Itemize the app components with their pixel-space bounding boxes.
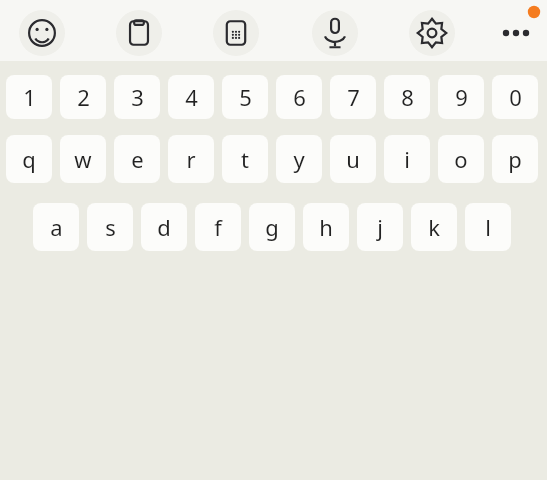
button[interactable]: l [465, 203, 511, 251]
button[interactable]: 9 [438, 75, 484, 119]
staticText: g [265, 212, 279, 242]
button[interactable]: y [276, 135, 322, 183]
button[interactable]: k [411, 203, 457, 251]
button[interactable]: 2 [60, 75, 106, 119]
button[interactable]: h [303, 203, 349, 251]
staticText: 7 [347, 82, 360, 112]
staticText: 8 [401, 82, 414, 112]
button[interactable]: d [141, 203, 187, 251]
staticText: "ctb_retention_day" [19, 197, 157, 217]
staticText: 3 [131, 82, 144, 112]
button[interactable]: More options [490, 0, 547, 61]
staticText: a [50, 212, 63, 242]
staticText: w [74, 144, 92, 174]
staticText: "30" [179, 197, 209, 217]
staticText: 9 [455, 82, 468, 112]
staticText: e [131, 144, 144, 174]
button[interactable]: Stickers [213, 10, 259, 56]
staticText: y [293, 144, 305, 174]
staticText: Save Changes [214, 143, 331, 166]
button[interactable]: Settings [409, 10, 455, 56]
staticText: l [485, 212, 491, 242]
button[interactable]: 5 [222, 75, 268, 119]
button[interactable]: r [168, 135, 214, 183]
button[interactable]: Clipboard [116, 10, 162, 56]
button[interactable]: f [195, 203, 241, 251]
button[interactable]: g [249, 203, 295, 251]
staticText: q [22, 144, 36, 174]
staticText: d [157, 212, 171, 242]
staticText: s [105, 212, 116, 242]
button[interactable]: w [60, 135, 106, 183]
button[interactable]: Emoji [19, 10, 65, 56]
button[interactable]: 0 [492, 75, 538, 119]
staticText: r [186, 144, 196, 174]
button[interactable]: u [330, 135, 376, 183]
staticText: 1 [23, 82, 36, 112]
button[interactable]: 6 [276, 75, 322, 119]
staticText: Edit Setting [44, 41, 149, 66]
button[interactable]: 1 [16, 75, 534, 113]
button[interactable]: e [114, 135, 160, 183]
staticText: 2 [77, 82, 90, 112]
button[interactable]: i [384, 135, 430, 183]
staticText: o [454, 144, 468, 174]
staticText: u [346, 144, 360, 174]
button[interactable]: 7 [330, 75, 376, 119]
button[interactable]: 3 [114, 75, 160, 119]
button[interactable]: 8 [384, 75, 430, 119]
staticText: 6 [293, 82, 306, 112]
staticText: j [377, 212, 383, 242]
button[interactable]: Save Changes [10, 120, 534, 189]
staticText: p [508, 144, 522, 174]
staticText: h [319, 212, 333, 242]
button[interactable]: 4 [168, 75, 214, 119]
staticText: 1 [20, 80, 33, 109]
button[interactable]: o [438, 135, 484, 183]
button[interactable]: j [357, 203, 403, 251]
button[interactable]: 1 [6, 75, 52, 119]
staticText: f [214, 212, 222, 242]
button[interactable]: p [492, 135, 538, 183]
button[interactable]: s [87, 203, 133, 251]
button[interactable]: a [33, 203, 79, 251]
button[interactable]: q [6, 135, 52, 183]
button[interactable]: Voice input [312, 10, 358, 56]
staticText: t [241, 144, 249, 174]
button[interactable]: t [222, 135, 268, 183]
staticText: k [428, 212, 440, 242]
staticText: 5 [239, 82, 252, 112]
staticText: 0 [509, 82, 522, 112]
staticText: i [404, 144, 410, 174]
staticText: 4 [185, 82, 198, 112]
